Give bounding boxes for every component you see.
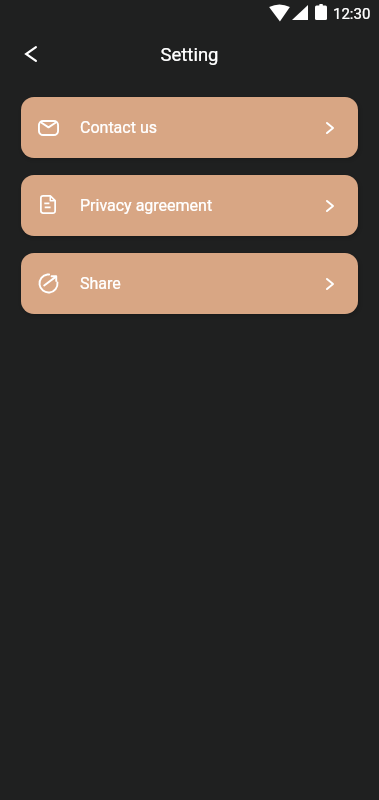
- button[interactable]: Share: [21, 253, 358, 314]
- staticText: Setting: [160, 44, 219, 66]
- staticText: Contact us: [80, 118, 157, 137]
- staticText: 12:30: [333, 5, 371, 23]
- staticText: Share: [80, 274, 121, 293]
- button[interactable]: Privacy agreement: [21, 175, 358, 236]
- button[interactable]: Contact us: [21, 97, 358, 158]
- staticText: Privacy agreement: [80, 196, 213, 215]
- button[interactable]: Back: [11, 34, 51, 74]
